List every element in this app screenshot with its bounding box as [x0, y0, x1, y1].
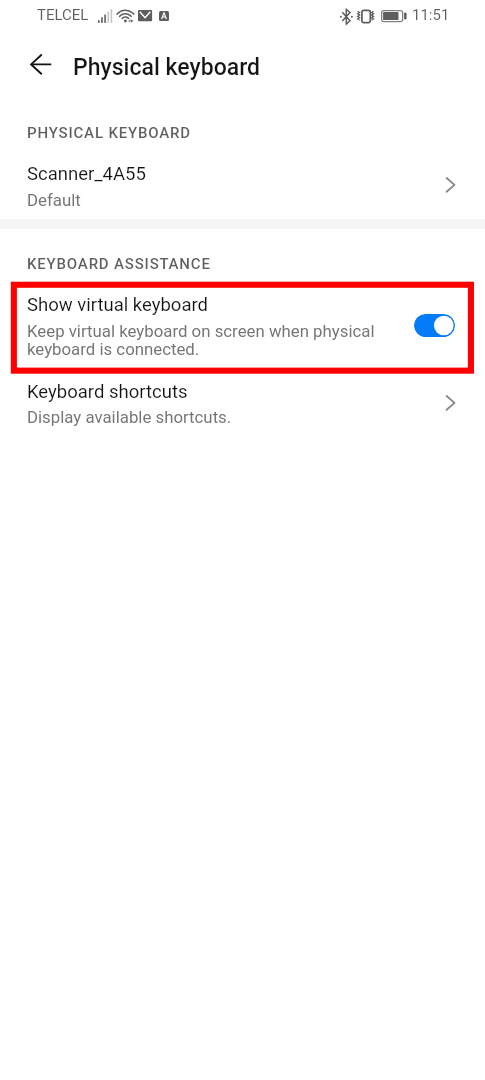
staticText: KEYBOARD ASSISTANCE — [27, 255, 211, 273]
button[interactable]: Keyboard shortcuts — [0, 373, 485, 431]
staticText: PHYSICAL KEYBOARD — [27, 124, 191, 142]
staticText: TELCEL — [37, 6, 89, 24]
staticText: Display available shortcuts. — [27, 407, 232, 427]
staticText: Default — [27, 190, 81, 210]
staticText: Keep virtual keyboard on screen when phy… — [27, 321, 377, 359]
staticText: Scanner_4A55 — [27, 163, 146, 185]
button[interactable]: Show virtual keyboard — [414, 314, 455, 337]
button[interactable]: Back — [20, 44, 64, 88]
staticText: Show virtual keyboard — [27, 294, 208, 316]
staticText: 11:51 — [412, 6, 450, 24]
button[interactable]: Show virtual keyboard — [0, 286, 485, 366]
staticText: Keyboard shortcuts — [27, 381, 188, 403]
button[interactable]: Scanner_4A55 — [0, 156, 485, 214]
staticText: Physical keyboard — [73, 54, 261, 81]
